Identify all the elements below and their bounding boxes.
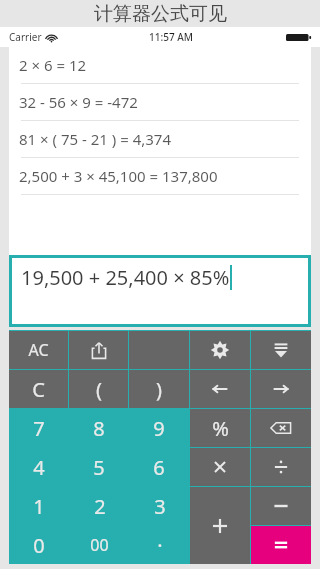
staticText: 7	[33, 415, 45, 442]
button[interactable]: 2 × 6 = 12	[9, 47, 311, 83]
button[interactable]: 5	[69, 448, 128, 486]
staticText: ·	[157, 532, 163, 559]
staticText: %	[212, 415, 229, 442]
button[interactable]: 81 × ( 75 - 21 ) = 4,374	[9, 121, 311, 157]
button[interactable]: Hide keypad	[251, 331, 311, 369]
button[interactable]: Move left	[190, 370, 250, 408]
button[interactable]: Equals	[251, 526, 311, 564]
button[interactable]: Share	[69, 331, 128, 369]
button[interactable]: 9	[129, 409, 189, 447]
button[interactable]: C	[9, 370, 68, 408]
button[interactable]: 7	[9, 409, 68, 447]
button[interactable]: 2	[70, 487, 129, 525]
staticText: 5	[93, 454, 105, 481]
button[interactable]: 32 - 56 × 9 = -472	[9, 84, 311, 120]
button[interactable]: )	[129, 370, 189, 408]
button[interactable]: Minus	[251, 487, 311, 525]
button[interactable]: 3	[130, 487, 189, 525]
staticText: 6	[153, 454, 165, 481]
staticText: (	[96, 376, 102, 403]
staticText: AC	[28, 339, 49, 361]
button[interactable]: Move right	[251, 370, 311, 408]
button[interactable]: 2,500 + 3 × 45,100 = 137,800	[9, 158, 311, 194]
staticText: C	[32, 376, 45, 403]
staticText: 81 × ( 75 - 21 ) = 4,374	[19, 129, 172, 149]
staticText: 计算器公式可见	[94, 2, 227, 26]
button[interactable]: %	[190, 409, 250, 447]
button[interactable]: 6	[129, 448, 189, 486]
button[interactable]: Settings	[190, 331, 250, 369]
staticText: 32 - 56 × 9 = -472	[19, 92, 138, 112]
button[interactable]: 19,500 + 25,400 × 85%	[12, 258, 308, 324]
staticText: 11:57 AM	[149, 30, 193, 44]
staticText: 19,500 + 25,400 × 85%	[21, 264, 230, 291]
button[interactable]: Multiply	[190, 448, 250, 486]
staticText: Carrier	[9, 30, 42, 44]
staticText: 0	[33, 532, 45, 559]
staticText: 1	[33, 493, 45, 520]
staticText: 00	[90, 534, 109, 556]
button[interactable]: AC	[9, 331, 68, 369]
button[interactable]: ·	[130, 526, 189, 564]
button[interactable]: 8	[69, 409, 128, 447]
staticText: 3	[154, 493, 166, 520]
button[interactable]: 1	[9, 487, 69, 525]
staticText: 2 × 6 = 12	[19, 55, 87, 75]
button[interactable]: Divide	[251, 448, 311, 486]
staticText: 9	[153, 415, 165, 442]
staticText: 2,500 + 3 × 45,100 = 137,800	[19, 166, 218, 186]
staticText: )	[156, 376, 162, 403]
button[interactable]: Backspace	[251, 409, 311, 447]
button[interactable]: 0	[9, 526, 69, 564]
staticText: 4	[33, 454, 45, 481]
button[interactable]: (	[69, 370, 128, 408]
staticText: 2	[94, 493, 106, 520]
staticText: 8	[93, 415, 105, 442]
button[interactable]: 00	[70, 526, 129, 564]
button[interactable]: Plus	[190, 487, 250, 564]
button[interactable]: 4	[9, 448, 68, 486]
